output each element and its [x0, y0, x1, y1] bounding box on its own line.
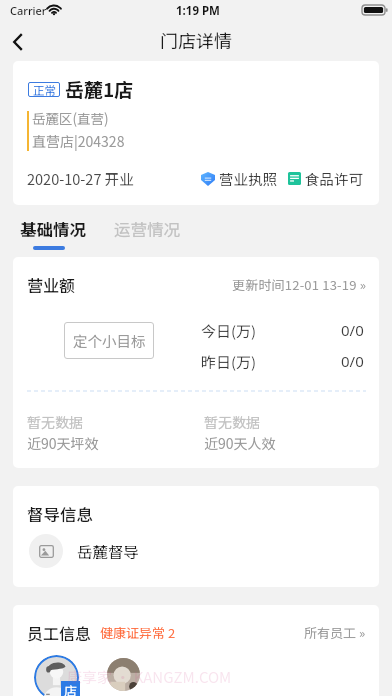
staticText: 食品许可 — [305, 168, 363, 189]
button[interactable]: 所有员工 » — [304, 623, 366, 642]
staticText: 直营店|204328 — [32, 131, 125, 151]
staticText: 正常 — [33, 82, 56, 97]
staticText: 店 — [64, 681, 78, 696]
staticText: 岳麓督导 — [77, 540, 140, 562]
staticText: 基础情况 — [20, 217, 86, 241]
staticText: 健康证异常 2 — [100, 623, 176, 642]
staticText: 营业执照 — [219, 168, 277, 189]
staticText: 昨日(万) — [201, 351, 257, 373]
staticText: 2020-10-27 开业 — [27, 168, 134, 189]
button[interactable]: 运营情况 — [106, 213, 186, 255]
staticText: 督导信息 — [27, 502, 93, 526]
staticText: 营业额 — [27, 273, 76, 296]
staticText: 岳麓区(直营) — [32, 108, 109, 128]
staticText: 暂无数据 — [27, 412, 83, 432]
staticText: 定个小目标 — [73, 330, 146, 351]
staticText: 0/0 — [341, 351, 364, 371]
staticText: 员工信息 — [27, 621, 92, 644]
staticText: 1:19 PM — [176, 3, 220, 19]
button[interactable]: 定个小目标 — [64, 322, 154, 359]
staticText: 所有员工 » — [304, 623, 366, 642]
button[interactable]: 岳麓督导 — [29, 534, 379, 568]
staticText: 近90天坪效 — [27, 433, 99, 453]
staticText: 更新时间12-01 13-19 » — [232, 275, 367, 294]
staticText: 今日(万) — [201, 320, 257, 342]
staticText: Carrier — [10, 3, 47, 18]
button[interactable] — [107, 658, 140, 691]
staticText: 运营情况 — [114, 217, 180, 241]
button[interactable]: 店 — [34, 655, 79, 696]
staticText: 近90天人效 — [204, 433, 276, 453]
staticText: 门店详情 — [160, 27, 232, 53]
staticText: 暂无数据 — [204, 412, 260, 432]
staticText: 0/0 — [341, 320, 364, 340]
staticText: 康享家 · KANGZM.COM — [67, 666, 232, 688]
button[interactable]: 更新时间12-01 13-19 » — [213, 273, 367, 295]
button[interactable]: 基础情况 — [12, 213, 92, 255]
button[interactable]: Back — [0, 25, 44, 61]
staticText: 岳麓1店 — [65, 75, 134, 103]
